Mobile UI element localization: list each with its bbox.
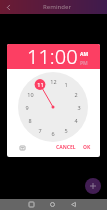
- button[interactable]: AM: [80, 51, 89, 58]
- button[interactable]: Recents: [26, 199, 37, 210]
- button[interactable]: 8: [25, 115, 35, 125]
- staticText: 9: [25, 104, 29, 111]
- button[interactable]: CANCEL: [54, 141, 78, 154]
- button[interactable]: 2: [71, 89, 81, 99]
- button[interactable]: 11: [35, 79, 45, 89]
- staticText: 12: [50, 78, 57, 85]
- button[interactable]: Add reminder: [85, 178, 101, 194]
- staticText: CANCEL: [56, 144, 76, 151]
- staticText: 8: [28, 117, 32, 124]
- button[interactable]: PM: [80, 60, 88, 67]
- staticText: 3: [77, 104, 81, 111]
- button[interactable]: 12: [48, 76, 58, 86]
- button[interactable]: 4: [71, 115, 81, 125]
- staticText: Reminder: [43, 3, 72, 11]
- staticText: 5: [64, 127, 68, 134]
- staticText: 1: [64, 81, 68, 88]
- button[interactable]: 7: [35, 125, 45, 135]
- staticText: OK: [83, 144, 91, 151]
- staticText: 2: [74, 91, 78, 98]
- staticText: 11: [37, 81, 44, 88]
- button[interactable]: Back: [68, 199, 79, 210]
- button[interactable]: 9: [22, 102, 32, 112]
- staticText: 6: [51, 130, 55, 137]
- button[interactable]: 11:00: [27, 44, 78, 68]
- staticText: 4: [74, 117, 78, 124]
- button[interactable]: Home: [47, 199, 58, 210]
- button[interactable]: 10: [25, 89, 35, 99]
- button[interactable]: 3: [74, 102, 84, 112]
- button[interactable]: 1: [61, 79, 71, 89]
- button[interactable]: 5: [61, 125, 71, 135]
- button[interactable]: 6: [48, 128, 58, 138]
- staticText: 7: [38, 127, 42, 134]
- button[interactable]: Switch to text input: [15, 141, 29, 154]
- staticText: 10: [27, 91, 34, 98]
- button[interactable]: Back: [0, 0, 16, 14]
- button[interactable]: OK: [81, 141, 93, 154]
